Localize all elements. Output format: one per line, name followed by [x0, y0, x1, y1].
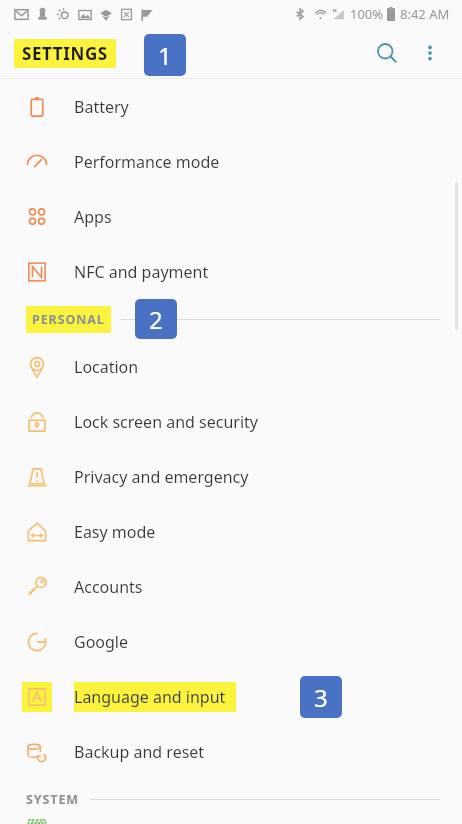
staticText: Performance mode: [74, 151, 220, 173]
staticText: PERSONAL: [32, 311, 105, 328]
staticText: SETTINGS: [22, 42, 108, 65]
staticText: Apps: [74, 206, 112, 228]
staticText: Lock screen and security: [74, 411, 258, 433]
staticText: Battery: [74, 96, 129, 118]
button[interactable]: Privacy and emergency: [0, 449, 462, 504]
button[interactable]: Lock screen and security: [0, 394, 462, 449]
button[interactable]: Backup and reset: [0, 724, 462, 779]
staticText: Accounts: [74, 576, 143, 598]
staticText: 3: [314, 681, 328, 714]
button[interactable]: More options: [412, 35, 448, 71]
staticText: Location: [74, 356, 139, 378]
staticText: Google: [74, 631, 129, 653]
button[interactable]: Language and input: [0, 669, 462, 724]
button[interactable]: Battery: [0, 79, 462, 134]
button[interactable]: Date and time: [0, 819, 462, 824]
staticText: NFC and payment: [74, 261, 209, 283]
button[interactable]: Location: [0, 339, 462, 394]
staticText: Easy mode: [74, 521, 156, 543]
button[interactable]: Accounts: [0, 559, 462, 614]
staticText: Language and input: [74, 686, 226, 708]
button[interactable]: NFC and payment: [0, 244, 462, 299]
button[interactable]: Apps: [0, 189, 462, 244]
staticText: Backup and reset: [74, 741, 205, 763]
button[interactable]: Search: [366, 32, 408, 74]
button[interactable]: Easy mode: [0, 504, 462, 559]
staticText: Privacy and emergency: [74, 466, 249, 488]
staticText: 100%: [350, 5, 384, 23]
staticText: 8:42 AM: [400, 5, 450, 23]
button[interactable]: SETTINGS: [22, 42, 108, 65]
staticText: 2: [149, 303, 163, 336]
staticText: SYSTEM: [26, 791, 80, 808]
staticText: 1: [158, 39, 172, 72]
button[interactable]: Performance mode: [0, 134, 462, 189]
button[interactable]: Google: [0, 614, 462, 669]
